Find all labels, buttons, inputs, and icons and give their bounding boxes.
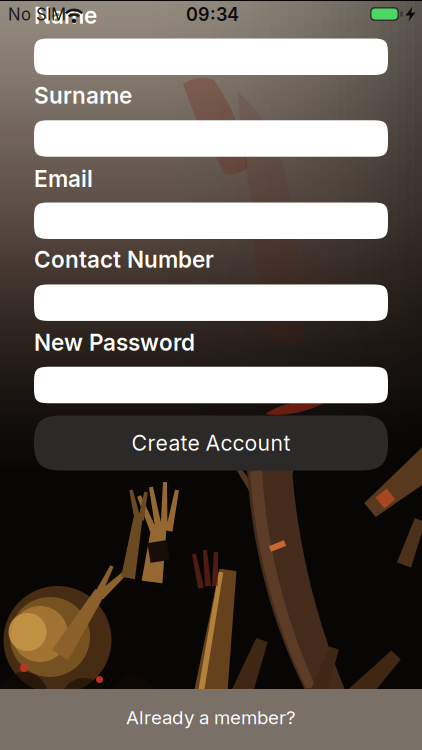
button[interactable]: Create Account	[34, 415, 388, 470]
staticText: Create Account	[131, 430, 290, 456]
staticText: Surname	[34, 82, 132, 109]
staticText: Email	[34, 165, 93, 192]
staticText: Contact Number	[34, 246, 214, 273]
staticText: Name	[34, 2, 97, 29]
staticText: New Password	[34, 329, 195, 356]
staticText: No SIM	[8, 4, 66, 25]
staticText: 09:34	[186, 4, 239, 25]
staticText: Already a member?	[126, 706, 296, 729]
button[interactable]: Already a member?	[0, 689, 422, 750]
